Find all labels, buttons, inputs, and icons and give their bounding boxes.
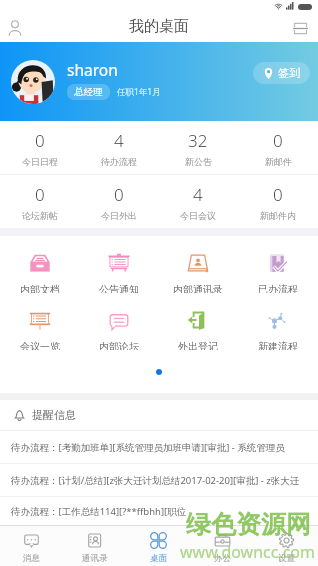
staticText: 论坛新帖	[22, 210, 58, 221]
button[interactable]: 桌面	[126, 526, 190, 566]
button[interactable]: 公告通知	[79, 236, 158, 293]
button[interactable]: 0	[0, 175, 79, 228]
button[interactable]: 内部论坛	[79, 293, 158, 350]
button[interactable]: 0	[238, 121, 318, 174]
staticText: 4	[114, 129, 124, 152]
staticText: 桌面	[150, 553, 167, 564]
button[interactable]: 会议一览	[0, 293, 79, 350]
staticText: 通讯录	[82, 553, 108, 564]
staticText: 待办流程	[101, 156, 137, 167]
staticText: 今日会议	[180, 210, 216, 221]
button[interactable]: 消息	[0, 526, 63, 566]
staticText: 外出登记	[178, 340, 218, 350]
button[interactable]: Profile	[1, 14, 29, 42]
staticText: 新公告	[185, 156, 212, 167]
staticText: 0	[273, 129, 283, 152]
button[interactable]: 内部通讯录	[158, 236, 238, 293]
button[interactable]: Scan	[287, 15, 313, 41]
staticText: 会议一览	[20, 340, 60, 350]
button[interactable]: 外出登记	[158, 293, 238, 350]
staticText: 新建流程	[258, 340, 298, 350]
staticText: 0	[35, 183, 45, 206]
button[interactable]: 签到	[253, 62, 310, 84]
staticText: 绿色资源网	[186, 509, 311, 540]
staticText: 总经理	[74, 86, 103, 98]
button[interactable]: 内部文档	[0, 236, 79, 293]
button[interactable]: 通讯录	[63, 526, 126, 566]
button[interactable]: 设置	[254, 526, 318, 566]
button[interactable]: 办公	[190, 526, 254, 566]
staticText: 0	[35, 129, 45, 152]
button[interactable]: 已办流程	[238, 236, 318, 293]
button[interactable]: 待办流程：[工作总结114][?**ffbhh][职位	[0, 497, 318, 525]
staticText: 0	[273, 183, 283, 206]
staticText: 提醒信息	[32, 408, 76, 422]
button[interactable]: 0	[238, 175, 318, 228]
staticText: www.downcc.com	[180, 541, 316, 563]
staticText: 我的桌面	[129, 17, 189, 36]
staticText: 32	[188, 129, 208, 152]
staticText: 新邮件内	[260, 210, 296, 221]
staticText: sharon	[67, 59, 118, 80]
staticText: 新邮件	[265, 156, 292, 167]
button[interactable]: 4	[79, 121, 158, 174]
staticText: 待办流程：[计划/总结][z张大迁计划总结2017-02-20][审批] - z…	[11, 474, 300, 487]
staticText: 内部通讯录	[173, 283, 223, 293]
staticText: 办公	[214, 553, 231, 564]
staticText: 待办流程：[考勤加班单][系统管理员加班申请][审批] - 系统管理员	[11, 441, 285, 454]
button[interactable]: 32	[158, 121, 238, 174]
button[interactable]: 0	[0, 121, 79, 174]
staticText: 内部文档	[20, 283, 60, 293]
button[interactable]: 新建流程	[238, 293, 318, 350]
staticText: 内部论坛	[99, 340, 139, 350]
staticText: 已办流程	[258, 283, 298, 293]
button[interactable]: 待办流程：[考勤加班单][系统管理员加班申请][审批] - 系统管理员	[0, 431, 318, 463]
staticText: 公告通知	[99, 283, 139, 293]
staticText: 0	[114, 183, 124, 206]
staticText: 签到	[278, 66, 300, 80]
staticText: 消息	[23, 553, 40, 564]
staticText: 今日日程	[22, 156, 58, 167]
staticText: 任职1年1月	[117, 86, 161, 98]
staticText: 设置	[278, 553, 295, 564]
button[interactable]: 待办流程：[计划/总结][z张大迁计划总结2017-02-20][审批] - z…	[0, 464, 318, 496]
button[interactable]: Avatar	[11, 60, 55, 104]
staticText: 今日外出	[101, 210, 137, 221]
staticText: 4	[193, 183, 203, 206]
button[interactable]: 0	[79, 175, 158, 228]
button[interactable]: 4	[158, 175, 238, 228]
staticText: 待办流程：[工作总结114][?**ffbhh][职位	[11, 505, 187, 518]
